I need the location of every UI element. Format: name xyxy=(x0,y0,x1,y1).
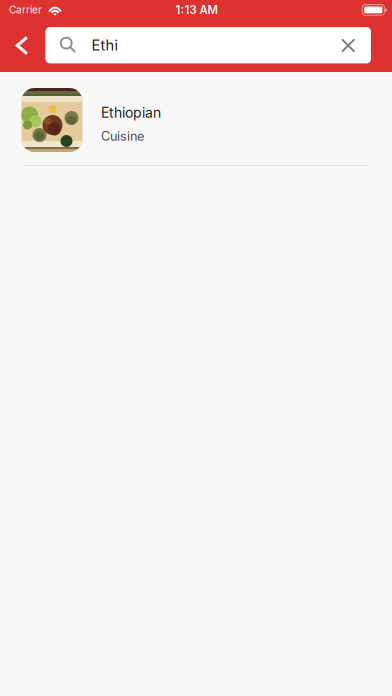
staticText: Cuisine xyxy=(101,129,144,144)
button[interactable]: Clear search xyxy=(331,27,365,63)
staticText: 1:13 AM xyxy=(175,3,217,17)
staticText: Ethi xyxy=(91,36,118,54)
staticText: Carrier xyxy=(9,4,42,16)
staticText: Ethiopian xyxy=(101,104,161,121)
button[interactable]: Ethiopian xyxy=(0,72,392,165)
button[interactable]: Back xyxy=(5,25,39,65)
